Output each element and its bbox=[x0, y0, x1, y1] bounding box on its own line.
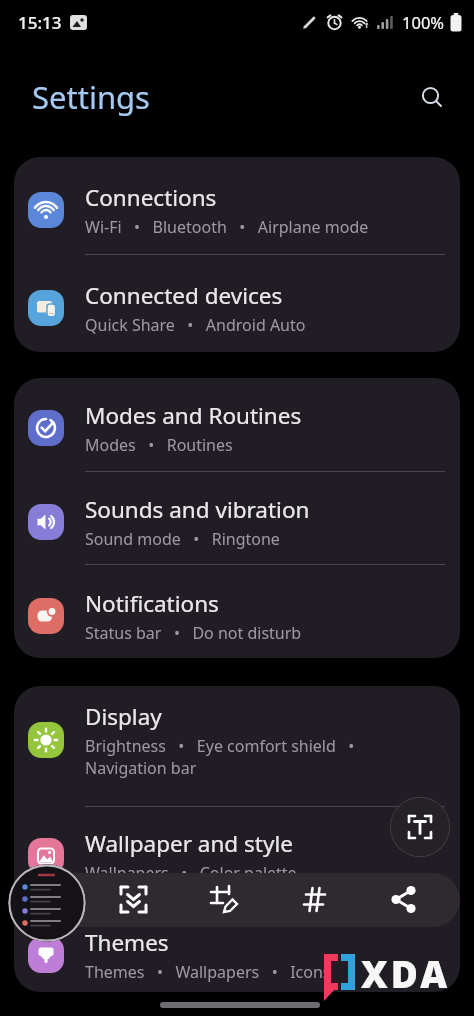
staticText: Modes • Routines bbox=[85, 434, 233, 456]
button[interactable] bbox=[390, 797, 450, 857]
button[interactable]: Notifications bbox=[14, 570, 460, 658]
button[interactable]: Display bbox=[14, 686, 460, 800]
button[interactable] bbox=[113, 879, 154, 920]
button[interactable]: Modes and Routines bbox=[14, 381, 460, 474]
button[interactable] bbox=[385, 879, 426, 920]
staticText: Settings bbox=[32, 76, 150, 118]
staticText: Wi-Fi • Bluetooth • Airplane mode bbox=[85, 216, 369, 238]
staticText: Notifications bbox=[85, 588, 219, 619]
staticText: 100% bbox=[402, 11, 445, 33]
button[interactable] bbox=[8, 864, 86, 942]
button[interactable] bbox=[418, 83, 446, 111]
button[interactable] bbox=[204, 879, 245, 920]
staticText: Brightness • Eye comfort shield • Naviga… bbox=[85, 735, 355, 779]
staticText: Wallpaper and style bbox=[85, 828, 293, 859]
staticText: Sound mode • Ringtone bbox=[85, 528, 280, 550]
button[interactable]: Connections bbox=[14, 161, 460, 258]
staticText: Connected devices bbox=[85, 280, 283, 311]
staticText: Connections bbox=[85, 182, 217, 213]
button[interactable]: Sounds and vibration bbox=[14, 476, 460, 568]
button[interactable]: Wallpaper and style bbox=[14, 808, 460, 903]
staticText: Modes and Routines bbox=[85, 400, 302, 431]
button[interactable]: Connected devices bbox=[14, 259, 460, 352]
staticText: 15:13 bbox=[18, 11, 62, 34]
staticText: Display bbox=[85, 701, 162, 732]
button[interactable]: Themes bbox=[14, 910, 460, 992]
staticText: Sounds and vibration bbox=[85, 494, 310, 525]
button[interactable] bbox=[294, 879, 335, 920]
staticText: Themes • Wallpapers • Icons bbox=[85, 961, 331, 983]
staticText: Quick Share • Android Auto bbox=[85, 314, 306, 336]
staticText: Wallpapers • Color palette bbox=[85, 862, 297, 884]
staticText: XDA bbox=[361, 948, 451, 998]
staticText: Status bar • Do not disturb bbox=[85, 622, 302, 644]
staticText: Themes bbox=[85, 927, 169, 958]
